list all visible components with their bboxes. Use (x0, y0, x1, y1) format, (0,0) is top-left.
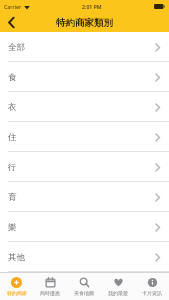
staticText: 美食地圖 (74, 290, 94, 296)
staticText: 卡片資訊 (142, 290, 162, 296)
staticText: 特約商家類別 (56, 17, 113, 29)
button[interactable]: 美食地圖 (67, 273, 101, 300)
staticText: 樂 (8, 222, 17, 233)
staticText: 全部 (8, 42, 25, 53)
button[interactable]: 特約商家 (0, 273, 33, 300)
button[interactable]: 全部 (0, 32, 169, 62)
button[interactable]: 住 (0, 122, 169, 152)
button[interactable]: 育 (0, 182, 169, 212)
button[interactable]: 衣 (0, 92, 169, 122)
staticText: 育 (8, 192, 17, 203)
staticText: 2:01 PM (82, 3, 102, 10)
staticText: 食 (8, 72, 17, 83)
button[interactable]: 卡片資訊 (135, 273, 169, 300)
staticText: 住 (8, 132, 17, 143)
button[interactable]: 我的最愛 (101, 273, 135, 300)
button[interactable]: 其他 (0, 242, 169, 272)
staticText: 商時優惠 (40, 290, 60, 296)
button[interactable]: 樂 (0, 212, 169, 242)
staticText: 我的最愛 (108, 290, 128, 296)
button[interactable]: Back (0, 13, 22, 32)
button[interactable]: 食 (0, 62, 169, 92)
staticText: Carrier (4, 3, 22, 10)
button[interactable]: 商時優惠 (33, 273, 67, 300)
staticText: 行 (8, 162, 17, 173)
staticText: 特約商家 (7, 290, 27, 296)
button[interactable]: 行 (0, 152, 169, 182)
staticText: 其他 (8, 252, 25, 263)
staticText: 衣 (8, 102, 17, 113)
